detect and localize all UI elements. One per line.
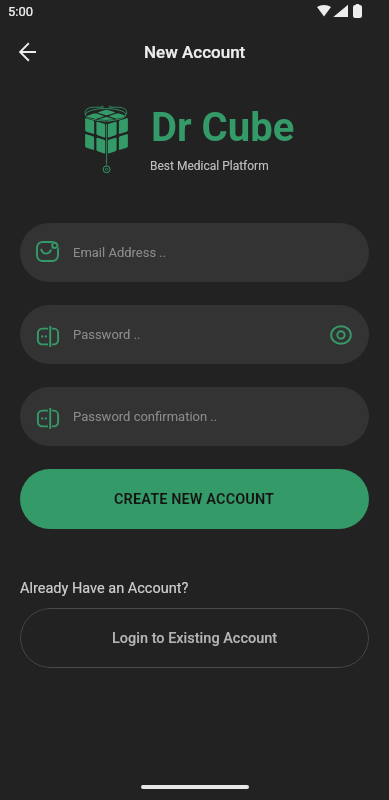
staticText: Dr Cube [151, 104, 295, 151]
button[interactable]: Login to Existing Account [20, 608, 369, 668]
staticText: Login to Existing Account [112, 630, 278, 647]
button[interactable]: Password .. [20, 305, 369, 364]
button[interactable]: Password confirmation .. [20, 387, 369, 446]
button[interactable]: Email Address .. [20, 223, 369, 282]
staticText: Email Address .. [73, 245, 358, 260]
button[interactable]: Show password [324, 318, 358, 352]
staticText: Password .. [73, 327, 324, 342]
staticText: New Account [144, 42, 246, 62]
staticText: Already Have an Account? [20, 580, 189, 597]
button[interactable]: Back [9, 33, 47, 71]
staticText: Best Medical Platform [150, 159, 269, 173]
staticText: 5:00 [8, 4, 34, 19]
button[interactable]: CREATE NEW ACCOUNT [20, 469, 369, 529]
staticText: Password confirmation .. [73, 409, 358, 424]
staticText: CREATE NEW ACCOUNT [114, 491, 275, 508]
